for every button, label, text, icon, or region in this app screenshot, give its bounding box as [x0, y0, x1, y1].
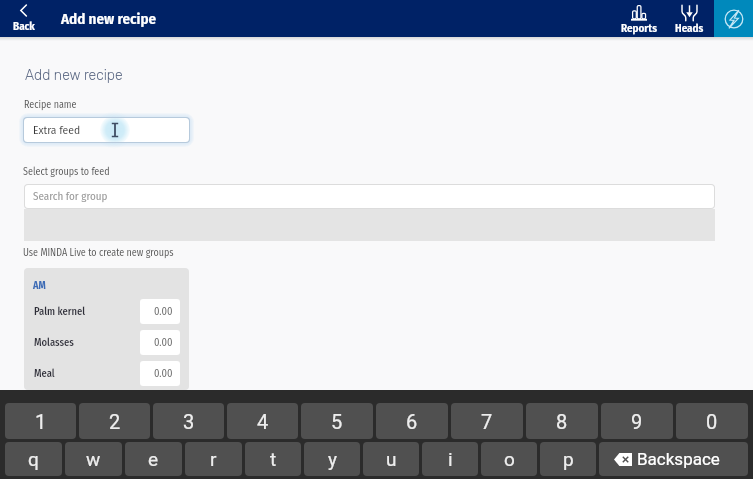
button[interactable]: 0 — [676, 403, 748, 439]
button[interactable]: q — [5, 442, 62, 476]
button[interactable]: 9 — [601, 403, 673, 439]
button[interactable]: i — [422, 442, 478, 476]
staticText: 1 — [35, 410, 47, 433]
button[interactable]: o — [481, 442, 537, 476]
staticText: Heads — [675, 22, 704, 35]
staticText: p — [563, 448, 574, 470]
staticText: Select groups to feed — [23, 166, 110, 178]
button[interactable]: Backspace — [599, 442, 748, 476]
button[interactable]: 5 — [301, 403, 373, 439]
staticText: 3 — [183, 410, 195, 433]
staticText: e — [148, 448, 159, 470]
staticText: 0.00 — [154, 336, 173, 349]
staticText: Back — [13, 20, 35, 33]
staticText: Meal — [34, 367, 55, 380]
button[interactable]: 6 — [376, 403, 448, 439]
staticText: 6 — [406, 410, 418, 433]
staticText: 4 — [257, 410, 269, 433]
button[interactable]: Reports — [612, 0, 665, 37]
staticText: Molasses — [34, 336, 74, 349]
staticText: 0.00 — [154, 367, 173, 380]
button[interactable]: t — [245, 442, 301, 476]
staticText: q — [28, 448, 39, 470]
staticText: Add new recipe — [61, 10, 157, 28]
staticText: Backspace — [637, 449, 720, 469]
staticText: Use MINDA Live to create new groups — [23, 247, 174, 259]
staticText: AM — [33, 280, 46, 292]
button[interactable]: r — [185, 442, 242, 476]
staticText: 8 — [556, 410, 568, 433]
button[interactable]: Quick action — [714, 0, 753, 37]
staticText: 7 — [481, 410, 493, 433]
button[interactable]: Heads — [665, 0, 714, 37]
button[interactable]: e — [125, 442, 182, 476]
button[interactable]: 0.00 — [140, 330, 180, 355]
button[interactable]: w — [65, 442, 122, 476]
button[interactable]: 0.00 — [140, 361, 180, 386]
staticText: 9 — [631, 410, 643, 433]
button[interactable]: Extra feed — [24, 118, 189, 142]
button[interactable]: 1 — [5, 403, 76, 439]
staticText: Palm kernel — [34, 305, 86, 318]
button[interactable]: Search for group — [25, 185, 714, 208]
button[interactable]: y — [304, 442, 360, 476]
staticText: w — [86, 448, 101, 470]
button[interactable]: 8 — [526, 403, 598, 439]
staticText: 5 — [331, 410, 343, 433]
staticText: 0 — [706, 410, 718, 433]
staticText: i — [448, 448, 453, 470]
button[interactable]: 0.00 — [140, 299, 180, 324]
staticText: o — [504, 448, 515, 470]
staticText: Extra feed — [33, 123, 81, 137]
button[interactable]: u — [363, 442, 419, 476]
staticText: 0.00 — [154, 305, 173, 318]
button[interactable]: 4 — [227, 403, 298, 439]
staticText: Search for group — [33, 190, 108, 203]
button[interactable]: 3 — [153, 403, 224, 439]
staticText: Reports — [621, 22, 657, 35]
button[interactable]: p — [540, 442, 596, 476]
staticText: t — [270, 448, 277, 470]
staticText: y — [328, 448, 337, 470]
staticText: r — [210, 448, 217, 470]
staticText: Recipe name — [24, 99, 77, 111]
button[interactable]: 2 — [79, 403, 150, 439]
staticText: 2 — [109, 410, 121, 433]
staticText: Add new recipe — [25, 67, 123, 84]
button[interactable]: 7 — [451, 403, 523, 439]
button[interactable]: Back — [0, 0, 47, 37]
staticText: u — [386, 448, 397, 470]
